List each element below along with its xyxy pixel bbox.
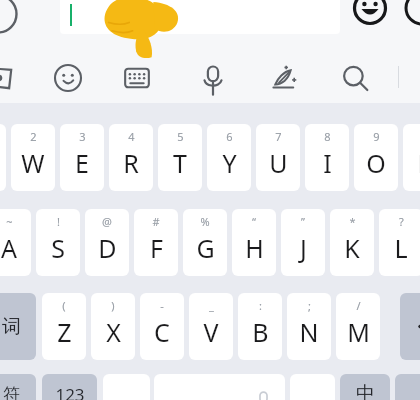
staticText: P [417, 146, 420, 180]
button[interactable]: 中 [340, 374, 390, 400]
button[interactable]: ? [379, 209, 420, 276]
button[interactable]: * [330, 209, 374, 276]
staticText: D [98, 231, 117, 265]
button[interactable]: Backspace [400, 293, 420, 360]
staticText: 9 [373, 129, 380, 144]
staticText: ! [57, 214, 60, 229]
staticText: V [203, 315, 219, 349]
button[interactable]: 7 [256, 124, 300, 191]
staticText: 6 [226, 129, 233, 144]
staticText: - [160, 298, 164, 313]
staticText: ” [301, 214, 305, 229]
button[interactable]: 123 [42, 374, 97, 400]
button[interactable]: ) [91, 293, 135, 360]
staticText: L [394, 231, 408, 265]
button[interactable]: “ [232, 209, 276, 276]
staticText: “ [252, 214, 256, 229]
button[interactable]: 符 [0, 374, 36, 400]
staticText: / [356, 298, 361, 313]
button[interactable]: # [134, 209, 178, 276]
button[interactable] [60, 0, 340, 34]
button[interactable]: Space [154, 374, 285, 400]
staticText: # [152, 214, 160, 229]
staticText: W [21, 146, 45, 180]
staticText: ; [308, 298, 311, 313]
staticText: _ [209, 298, 214, 313]
button[interactable]: @ [85, 209, 129, 276]
button[interactable]: Handwriting [267, 62, 299, 94]
button[interactable]: Search [339, 62, 371, 94]
staticText: % [200, 214, 210, 229]
staticText: : [259, 298, 262, 313]
staticText: H [245, 231, 264, 265]
button[interactable]: Emoticons [52, 62, 84, 94]
button[interactable] [395, 374, 420, 400]
button[interactable]: ; [287, 293, 331, 360]
button[interactable]: % [183, 209, 227, 276]
staticText: E [75, 146, 89, 180]
staticText: 5 [177, 129, 184, 144]
staticText: R [123, 146, 139, 180]
staticText: 2 [30, 129, 37, 144]
button[interactable]: Emoji [352, 0, 388, 26]
button[interactable]: 8 [305, 124, 349, 191]
staticText: B [252, 315, 269, 349]
button[interactable]: 1 [0, 124, 6, 191]
staticText: N [299, 315, 319, 349]
staticText: 词 [2, 315, 21, 339]
button[interactable]: 9 [354, 124, 398, 191]
staticText: K [344, 231, 360, 265]
staticText: U [269, 146, 288, 180]
staticText: A [1, 231, 17, 265]
button[interactable]: 5 [158, 124, 202, 191]
staticText: G [196, 231, 215, 265]
staticText: 中 [356, 382, 375, 400]
button[interactable]: Voice input [197, 62, 229, 94]
staticText: ( [62, 298, 66, 313]
staticText: C [154, 315, 170, 349]
staticText: @ [102, 214, 112, 229]
staticText: J [300, 231, 307, 265]
button[interactable]: Voice [0, 0, 18, 34]
staticText: Z [57, 315, 72, 349]
staticText: * [349, 214, 356, 229]
staticText: I [323, 146, 332, 180]
button[interactable]: Stickers [0, 61, 18, 95]
staticText: ) [111, 298, 115, 313]
button[interactable]: 3 [60, 124, 104, 191]
staticText: 3 [79, 129, 86, 144]
staticText: X [106, 315, 121, 349]
button[interactable]: 词 [0, 293, 36, 360]
staticText: 符 [3, 384, 20, 400]
button[interactable]: _ [189, 293, 233, 360]
button[interactable]: - [140, 293, 184, 360]
staticText: 8 [324, 129, 331, 144]
staticText: Y [222, 146, 237, 180]
staticText: 123 [55, 383, 85, 400]
staticText: 4 [128, 129, 135, 144]
button[interactable]: / [336, 293, 380, 360]
staticText: ? [399, 214, 404, 229]
staticText: M [347, 315, 370, 349]
button[interactable]: 4 [109, 124, 153, 191]
staticText: S [51, 231, 65, 265]
button[interactable]: : [238, 293, 282, 360]
staticText: 7 [275, 129, 282, 144]
button[interactable]: ” [281, 209, 325, 276]
button[interactable]: ( [42, 293, 86, 360]
staticText: T [173, 146, 187, 180]
button[interactable]: 2 [11, 124, 55, 191]
button[interactable]: 6 [207, 124, 251, 191]
staticText: ~ [6, 214, 13, 229]
button[interactable]: Keyboard [121, 62, 153, 94]
staticText: F [150, 231, 163, 265]
staticText: O [366, 146, 386, 180]
button[interactable]: ! [36, 209, 80, 276]
button[interactable]: ~ [0, 209, 31, 276]
